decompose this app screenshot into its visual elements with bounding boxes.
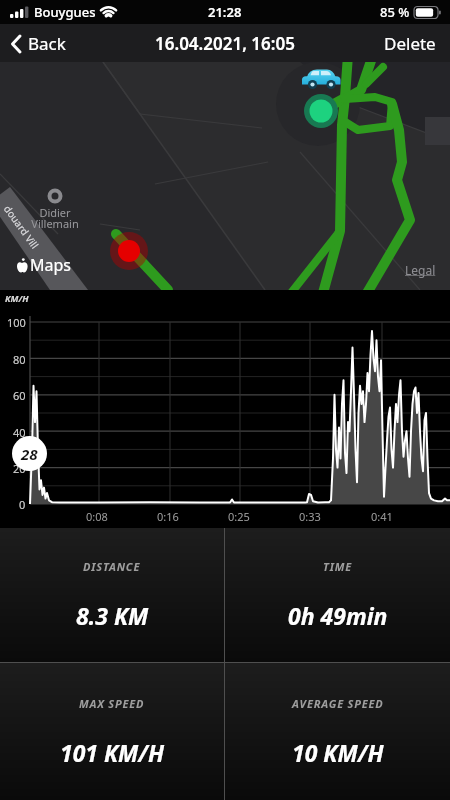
staticText: 0:25 bbox=[228, 509, 250, 524]
button[interactable]: DISTANCE bbox=[0, 528, 224, 662]
staticText: DISTANCE bbox=[83, 559, 141, 574]
staticText: 0:41 bbox=[371, 509, 393, 524]
staticText: douard Vill bbox=[1, 202, 42, 252]
staticText: 0:16 bbox=[157, 509, 179, 524]
staticText: 0 bbox=[19, 497, 26, 512]
staticText: 20 bbox=[13, 461, 26, 476]
staticText: Legal bbox=[405, 262, 436, 278]
staticText: TIME bbox=[323, 559, 352, 574]
staticText: 85 % bbox=[380, 3, 410, 21]
staticText: 21:28 bbox=[208, 3, 242, 21]
staticText: 10 KM/H bbox=[292, 737, 384, 768]
staticText: 60 bbox=[13, 388, 26, 403]
button[interactable]: MAX SPEED bbox=[0, 663, 224, 800]
button[interactable]: Back bbox=[10, 32, 66, 55]
staticText: 100 bbox=[7, 315, 26, 330]
staticText: Maps bbox=[30, 254, 71, 276]
staticText: 0:08 bbox=[86, 509, 108, 524]
staticText: Didier Villemain bbox=[23, 205, 87, 232]
staticText: Back bbox=[28, 32, 66, 55]
staticText: 40 bbox=[13, 425, 26, 440]
staticText: MAX SPEED bbox=[79, 696, 145, 711]
staticText: KM/H bbox=[5, 292, 29, 304]
staticText: 8.3 KM bbox=[76, 600, 149, 631]
staticText: 0:33 bbox=[299, 509, 321, 524]
staticText: 80 bbox=[13, 352, 26, 367]
staticText: Delete bbox=[384, 32, 436, 55]
staticText: Bouygues bbox=[34, 3, 96, 21]
button[interactable]: Delete bbox=[384, 32, 436, 55]
button[interactable]: Legal bbox=[405, 262, 436, 278]
staticText: 16.04.2021, 16:05 bbox=[155, 32, 295, 55]
button[interactable]: TIME bbox=[225, 528, 450, 662]
staticText: 0h 49min bbox=[288, 600, 388, 631]
staticText: AVERAGE SPEED bbox=[292, 696, 384, 711]
button[interactable]: AVERAGE SPEED bbox=[225, 663, 450, 800]
staticText: 101 KM/H bbox=[60, 737, 165, 768]
staticText: 28 bbox=[21, 444, 38, 464]
